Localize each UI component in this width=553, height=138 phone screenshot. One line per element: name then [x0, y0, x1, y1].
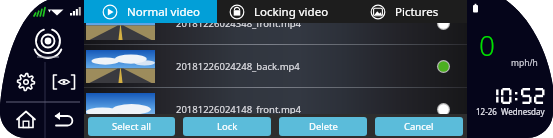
staticText: Cancel — [404, 120, 434, 133]
button[interactable]: Locking video — [217, 0, 341, 23]
button[interactable]: Normal video — [84, 0, 217, 23]
button[interactable]: Pictures — [341, 0, 467, 23]
staticText: Select all — [112, 120, 152, 133]
button[interactable]: Delete — [279, 117, 367, 136]
staticText: mph/h — [511, 57, 538, 69]
button[interactable]: Home — [8, 103, 44, 138]
staticText: Lock — [217, 120, 238, 133]
staticText: Pictures — [395, 4, 439, 20]
staticText: Delete — [309, 120, 338, 133]
staticText: 12-26 Wednesday — [476, 106, 545, 117]
staticText: 20181226024348_front.mp4 — [176, 17, 302, 30]
staticText: Normal video — [127, 4, 200, 20]
staticText: 20181226024248_back.mp4 — [176, 60, 300, 73]
staticText: 0 — [479, 26, 495, 64]
button[interactable]: Lock — [183, 117, 271, 136]
button[interactable]: 20181226024348_front.mp4 — [84, 2, 467, 44]
staticText: Locking video — [254, 4, 329, 20]
button[interactable]: Back — [46, 103, 82, 138]
button[interactable]: Select all — [88, 117, 175, 136]
staticText: 20181226024148_front.mp4 — [176, 103, 302, 116]
button[interactable]: 20181226024248_back.mp4 — [84, 45, 467, 87]
button[interactable]: Cancel — [375, 117, 463, 136]
button[interactable]: Settings — [8, 64, 44, 102]
button[interactable]: Camera preview — [46, 64, 82, 102]
button[interactable]: 20181226024148_front.mp4 — [84, 88, 467, 130]
